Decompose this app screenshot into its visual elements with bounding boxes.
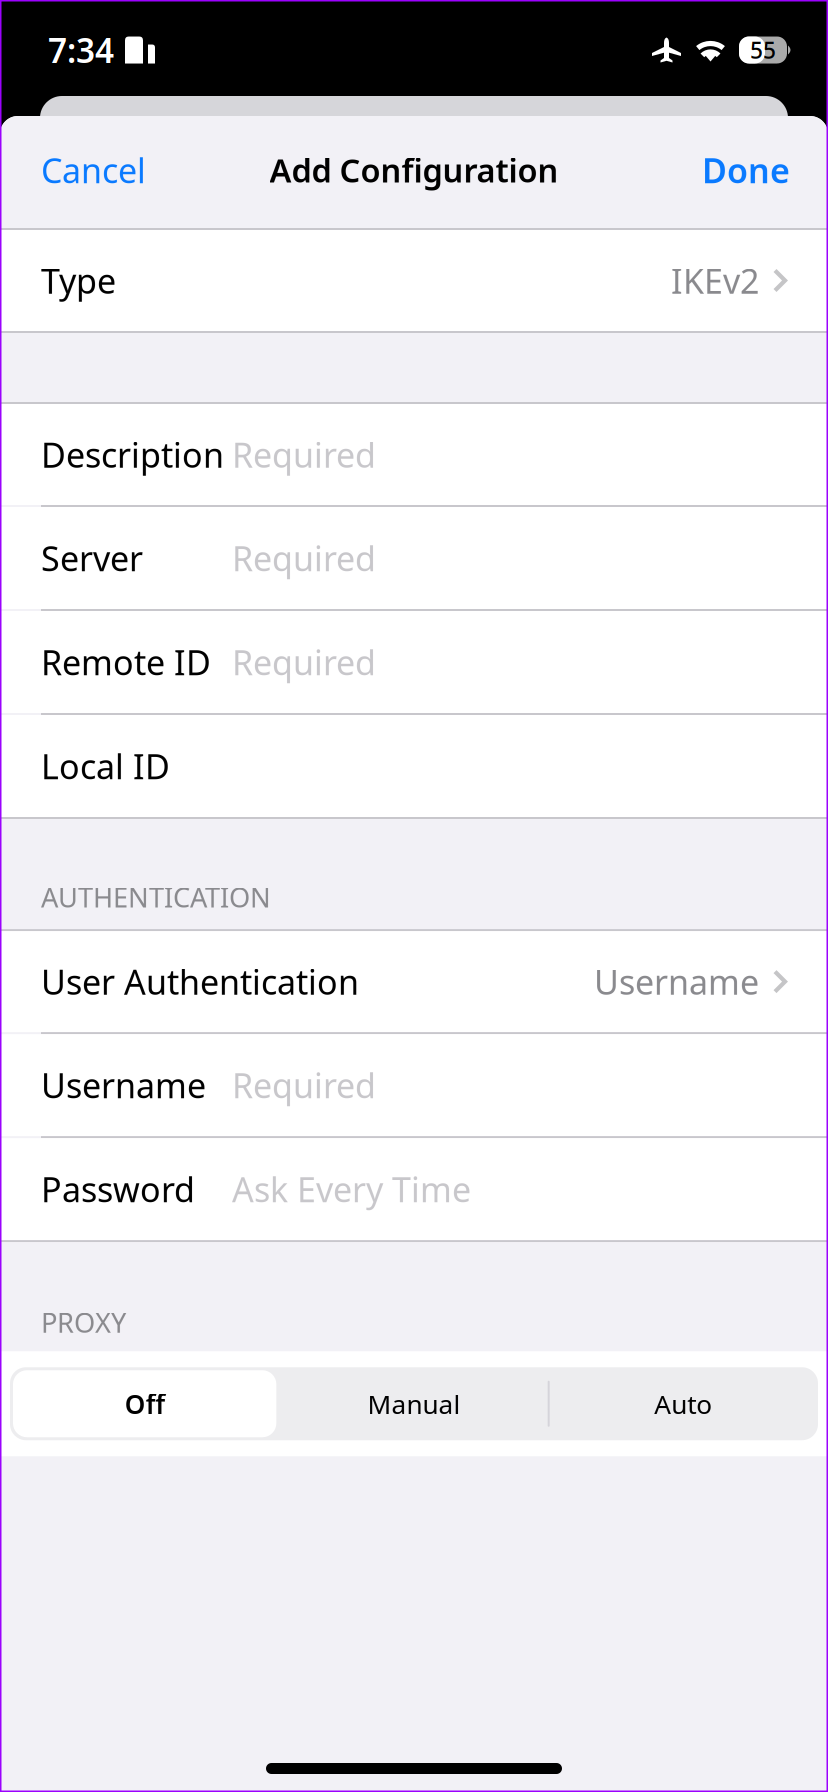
button[interactable]: User Authentication — [0, 931, 828, 1032]
button[interactable]: Type — [0, 230, 828, 331]
staticText: Description — [41, 432, 224, 477]
staticText: Done — [702, 147, 790, 193]
staticText: Local ID — [41, 743, 170, 789]
staticText: User Authentication — [41, 959, 359, 1004]
staticText: Off — [125, 1386, 165, 1421]
staticText: Auto — [654, 1386, 712, 1421]
staticText: Remote ID — [41, 639, 211, 685]
staticText: AUTHENTICATION — [41, 879, 271, 915]
button[interactable]: Done — [668, 116, 828, 228]
button[interactable]: Description — [0, 404, 828, 505]
button[interactable]: Off — [10, 1367, 279, 1440]
staticText: Add Configuration — [269, 148, 558, 192]
button[interactable]: Server — [0, 507, 828, 609]
staticText: 55 — [750, 35, 776, 65]
button[interactable]: Username — [0, 1034, 828, 1136]
button[interactable]: Remote ID — [0, 611, 828, 713]
staticText: Cancel — [41, 147, 146, 193]
staticText: Required — [232, 639, 376, 685]
staticText: Server — [41, 535, 143, 581]
staticText: Password — [41, 1166, 195, 1212]
staticText: Required — [232, 535, 376, 581]
staticText: Manual — [367, 1386, 460, 1421]
staticText: IKEv2 — [671, 258, 759, 303]
button[interactable]: Manual — [279, 1367, 549, 1440]
staticText: Username — [594, 959, 759, 1004]
staticText: Username — [41, 1062, 206, 1108]
button[interactable]: Local ID — [0, 715, 828, 817]
staticText: Required — [232, 432, 376, 477]
staticText: 7:34 — [48, 28, 114, 72]
button[interactable]: Cancel — [0, 116, 180, 228]
staticText: PROXY — [41, 1304, 126, 1340]
staticText: Required — [232, 1062, 376, 1108]
staticText: Ask Every Time — [232, 1166, 471, 1212]
button[interactable]: Auto — [549, 1367, 818, 1440]
button[interactable]: Password — [0, 1138, 828, 1240]
staticText: Type — [41, 258, 116, 303]
